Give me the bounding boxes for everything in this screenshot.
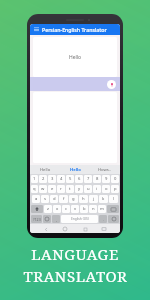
button[interactable]: ?123 [31, 215, 42, 223]
staticText: v [74, 206, 77, 212]
button[interactable]: Backspace [107, 205, 119, 213]
button[interactable]: Hello [30, 165, 60, 174]
staticText: Hello [40, 167, 51, 173]
button[interactable]: Enter [108, 215, 119, 223]
staticText: 3 [51, 176, 54, 182]
staticText: , [56, 217, 57, 222]
staticText: b [83, 206, 86, 212]
button[interactable]: u [84, 185, 92, 193]
button[interactable]: d [50, 195, 58, 203]
button[interactable]: j [89, 195, 98, 203]
staticText: x [56, 206, 59, 212]
staticText: TRANSLATOR [23, 266, 128, 286]
button[interactable]: z [44, 205, 52, 213]
staticText: y [78, 186, 81, 192]
button[interactable]: x [53, 205, 61, 213]
staticText: c [65, 206, 68, 212]
button[interactable]: Hello [60, 165, 90, 174]
staticText: w [41, 186, 45, 192]
button[interactable]: Emoji [43, 215, 51, 223]
button[interactable]: m [98, 205, 106, 213]
staticText: 7 [87, 176, 90, 182]
staticText: z [47, 206, 49, 212]
button[interactable]: Keyboard [100, 225, 108, 233]
button[interactable]: Hows.. [90, 165, 120, 174]
button[interactable]: t [66, 185, 74, 193]
staticText: 2 [42, 176, 45, 182]
staticText: . [103, 217, 104, 222]
staticText: Hows.. [98, 167, 112, 173]
button[interactable]: Space [61, 215, 98, 223]
staticText: 8 [96, 176, 99, 182]
staticText: q [33, 186, 36, 192]
staticText: p [114, 186, 117, 192]
staticText: 1 [33, 176, 36, 182]
staticText: n [92, 206, 95, 212]
button[interactable]: 1 [31, 175, 38, 183]
staticText: Hello [69, 54, 82, 61]
button[interactable]: a [32, 195, 40, 203]
button[interactable]: p [111, 185, 119, 193]
staticText: 4 [60, 176, 63, 182]
staticText: u [87, 186, 90, 192]
button[interactable]: o [102, 185, 110, 193]
staticText: i [96, 186, 98, 192]
staticText: 5 [69, 176, 72, 182]
staticText: d [53, 196, 56, 202]
button[interactable]: 8 [93, 175, 101, 183]
button[interactable]: r [57, 185, 65, 193]
button[interactable]: Voice input [107, 80, 116, 89]
button[interactable]: b [80, 205, 88, 213]
staticText: l [113, 196, 115, 202]
button[interactable]: Hello [33, 37, 117, 77]
staticText: m [100, 206, 104, 212]
staticText: 0 [114, 176, 117, 182]
button[interactable]: v [71, 205, 79, 213]
button[interactable]: 0 [111, 175, 119, 183]
staticText: 9 [105, 176, 108, 182]
staticText: h [82, 196, 85, 202]
staticText: t [69, 186, 71, 192]
button[interactable]: Home [61, 225, 69, 233]
staticText: j [93, 196, 95, 202]
button[interactable]: k [99, 195, 108, 203]
button[interactable]: e [48, 185, 56, 193]
button[interactable]: 2 [39, 175, 47, 183]
button[interactable]: g [69, 195, 78, 203]
staticText: o [105, 186, 108, 192]
staticText: s [44, 196, 47, 202]
staticText: English (US) [71, 217, 89, 221]
staticText: k [102, 196, 105, 202]
staticText: a [35, 196, 38, 202]
button[interactable]: 6 [75, 175, 83, 183]
staticText: r [60, 186, 62, 192]
button[interactable]: q [31, 185, 38, 193]
staticText: e [51, 186, 54, 192]
button[interactable]: 7 [84, 175, 92, 183]
staticText: ?123 [33, 217, 41, 222]
button[interactable]: y [75, 185, 83, 193]
button[interactable]: l [109, 195, 118, 203]
button[interactable]: 9 [102, 175, 110, 183]
button[interactable]: h [79, 195, 88, 203]
button[interactable]: 4 [57, 175, 65, 183]
button[interactable]: Menu [33, 26, 40, 33]
button[interactable]: s [41, 195, 49, 203]
button[interactable]: Back [42, 225, 50, 233]
button[interactable]: w [39, 185, 47, 193]
button[interactable]: , [52, 215, 60, 223]
staticText: LANGUAGE [31, 244, 119, 264]
button[interactable]: f [59, 195, 68, 203]
staticText: f [63, 196, 65, 202]
button[interactable]: c [62, 205, 70, 213]
button[interactable]: 5 [66, 175, 74, 183]
staticText: Persian-English Translator [42, 26, 107, 33]
button[interactable]: 3 [48, 175, 56, 183]
button[interactable]: i [93, 185, 101, 193]
button[interactable]: n [89, 205, 97, 213]
button[interactable]: Shift [31, 205, 43, 213]
button[interactable]: Recents [81, 225, 89, 233]
staticText: g [72, 196, 75, 202]
